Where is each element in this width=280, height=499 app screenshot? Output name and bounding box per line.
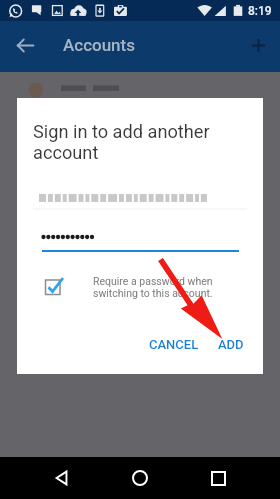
staticText: ADD [218,337,244,352]
staticText: Sign in to add another account [33,121,223,163]
button[interactable]: ADD [212,332,250,356]
button[interactable]: Add account [239,26,277,64]
staticText: Accounts [63,35,135,55]
button[interactable]: Require a password when switching to thi… [41,274,241,304]
button[interactable]: Home [120,458,160,498]
staticText: Require a password when switching to thi… [93,275,243,300]
button[interactable]: Recents [198,458,238,498]
button[interactable]: Back [42,458,82,498]
staticText: CANCEL [149,337,199,352]
staticText: 8:19 [248,4,272,18]
button[interactable]: CANCEL [143,332,205,356]
button[interactable]: Back [6,26,44,64]
